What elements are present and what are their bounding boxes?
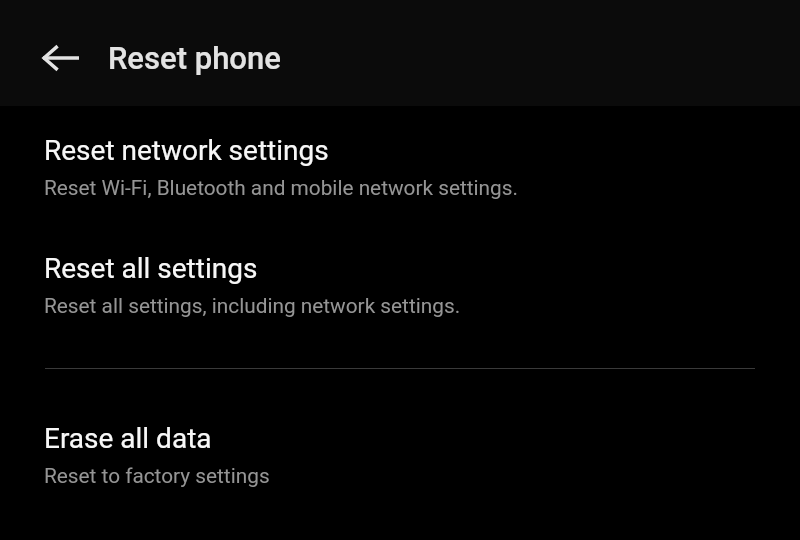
staticText: Reset all settings, including network se…	[44, 294, 461, 318]
staticText: Reset phone	[108, 40, 281, 76]
button[interactable]: Back	[26, 23, 96, 93]
button[interactable]: Erase all data	[0, 402, 800, 502]
staticText: Reset Wi-Fi, Bluetooth and mobile networ…	[44, 176, 518, 200]
staticText: Reset all settings	[44, 252, 258, 285]
staticText: Erase all data	[44, 422, 212, 455]
button[interactable]: Reset network settings	[0, 114, 800, 214]
staticText: Reset to factory settings	[44, 464, 270, 488]
staticText: Reset network settings	[44, 134, 329, 167]
button[interactable]: Reset all settings	[0, 232, 800, 332]
